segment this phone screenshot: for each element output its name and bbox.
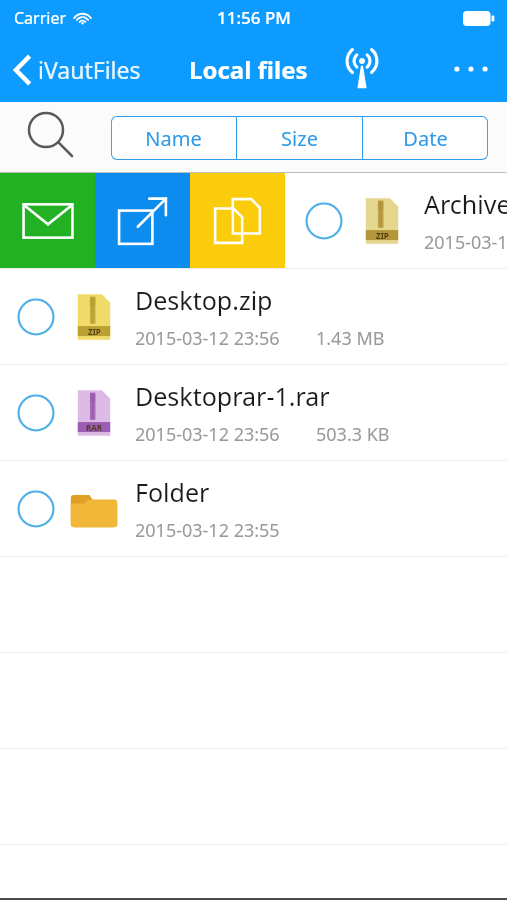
- button[interactable]: Open in: [95, 173, 190, 268]
- button[interactable]: Date: [363, 116, 488, 160]
- button[interactable]: Name: [111, 116, 236, 160]
- button[interactable]: iVautFiles: [0, 46, 151, 93]
- staticText: Archive: [424, 187, 507, 221]
- button[interactable]: RAR: [0, 365, 507, 460]
- staticText: Carrier: [14, 7, 67, 29]
- button[interactable]: Folder: [0, 461, 507, 556]
- staticText: 11:56 PM: [217, 6, 291, 29]
- staticText: 1.43 MB: [316, 326, 385, 351]
- staticText: Desktoprar-1.rar: [135, 379, 330, 413]
- staticText: iVautFiles: [38, 54, 141, 85]
- button[interactable]: Mail: [0, 173, 95, 268]
- button[interactable]: More options: [435, 36, 507, 102]
- staticText: ZIP: [88, 326, 101, 337]
- staticText: Desktop.zip: [135, 283, 273, 317]
- staticText: Local files: [189, 53, 308, 86]
- staticText: 503.3 KB: [316, 422, 390, 447]
- button[interactable]: Search: [16, 102, 86, 172]
- staticText: Folder: [135, 475, 210, 509]
- staticText: RAR: [86, 422, 103, 433]
- staticText: 2015-03-12 23:55: [135, 518, 280, 543]
- staticText: 2015-03-12 23:56: [135, 326, 280, 351]
- staticText: Name: [145, 125, 202, 152]
- staticText: Size: [281, 125, 318, 152]
- staticText: ZIP: [376, 230, 389, 241]
- button[interactable]: Broadcast: [334, 41, 390, 97]
- staticText: 2015-03-1: [424, 230, 507, 255]
- button[interactable]: ZIP: [0, 269, 507, 364]
- button[interactable]: Copy: [190, 173, 285, 268]
- staticText: 2015-03-12 23:56: [135, 422, 280, 447]
- staticText: Date: [403, 125, 448, 152]
- button[interactable]: Size: [237, 116, 362, 160]
